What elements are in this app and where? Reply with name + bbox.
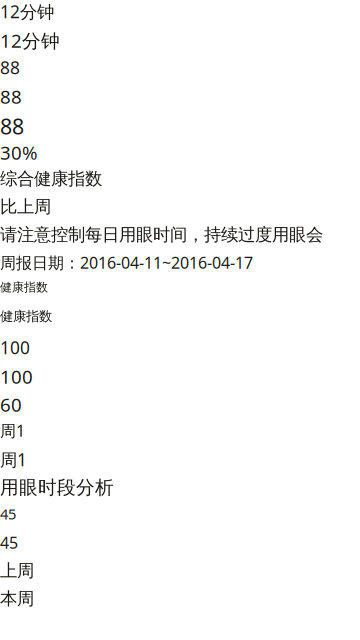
staticText: 88: [0, 56, 20, 79]
staticText: 健康指数: [0, 308, 52, 324]
staticText: 本周: [0, 588, 34, 609]
staticText: 12分钟: [0, 0, 54, 23]
staticText: 比上周: [0, 196, 51, 217]
staticText: 上周: [0, 560, 34, 581]
staticText: 综合健康指数: [0, 168, 102, 189]
staticText: 周报日期：2016-04-11~2016-04-17: [0, 252, 253, 273]
staticText: 请注意控制每日用眼时间，持续过度用眼会: [0, 224, 323, 245]
staticText: 100: [0, 336, 30, 359]
staticText: 30%: [0, 140, 38, 165]
staticText: 周1: [0, 448, 27, 471]
staticText: 100: [0, 364, 33, 389]
staticText: 45: [0, 532, 18, 553]
staticText: 周1: [0, 420, 25, 441]
staticText: 60: [0, 392, 22, 417]
staticText: 88: [0, 84, 22, 109]
staticText: 健康指数: [0, 280, 48, 295]
staticText: 45: [0, 504, 16, 523]
staticText: 88: [0, 112, 24, 140]
staticText: 12分钟: [0, 28, 60, 53]
staticText: 用眼时段分析: [0, 476, 114, 499]
